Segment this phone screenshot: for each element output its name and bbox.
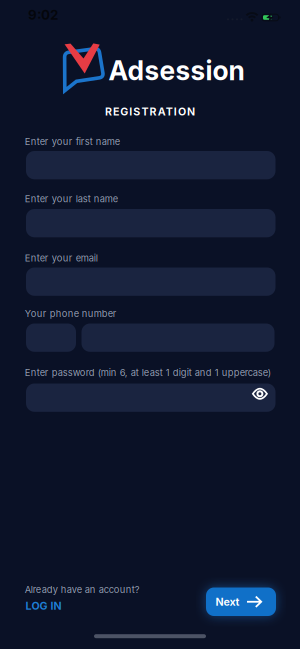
button[interactable]: Next <box>206 587 276 616</box>
staticText: Your phone number <box>25 308 117 319</box>
staticText: Enter password (min 6, at least 1 digit … <box>25 367 271 378</box>
staticText: Enter your last name <box>25 193 118 204</box>
button[interactable]: Password <box>26 383 275 412</box>
button[interactable]: LOG IN <box>25 599 61 612</box>
button[interactable]: Country code <box>26 323 76 352</box>
staticText: REGISTRATION <box>105 105 195 118</box>
staticText: 9:02 <box>28 7 58 23</box>
staticText: LOG IN <box>25 599 61 612</box>
staticText: Adsession <box>108 55 244 86</box>
staticText: Enter your first name <box>25 136 120 147</box>
staticText: Next <box>215 595 239 608</box>
button[interactable]: Show password <box>251 384 269 405</box>
staticText: Already have an account? <box>25 584 140 595</box>
staticText: Enter your email <box>25 253 98 264</box>
